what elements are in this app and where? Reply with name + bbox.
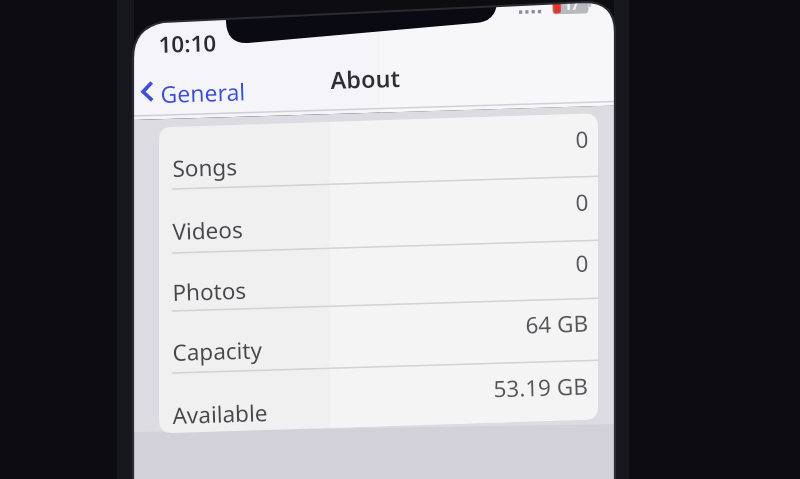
button[interactable]: iPhone About settings screen [0, 0, 800, 479]
